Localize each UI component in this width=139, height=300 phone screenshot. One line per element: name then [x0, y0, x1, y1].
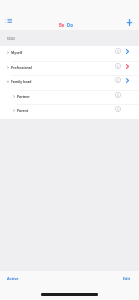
button[interactable]: Family head — [0, 75, 139, 90]
staticText: Be — [59, 22, 65, 28]
button[interactable]: Menu — [4, 16, 14, 26]
staticText: Professional — [11, 65, 32, 70]
button[interactable]: Professional — [0, 61, 139, 76]
button[interactable]: Add — [125, 18, 134, 27]
staticText: Myself — [11, 50, 23, 55]
button[interactable]: Myself — [0, 46, 139, 61]
staticText: Active — [7, 276, 19, 281]
button[interactable]: Parent — [0, 104, 139, 119]
staticText: ROLES — [7, 37, 15, 41]
staticText: Edit — [123, 276, 131, 281]
staticText: Family head — [11, 79, 32, 84]
staticText: Partner — [17, 94, 30, 99]
staticText: Do — [67, 22, 73, 28]
button[interactable]: Active — [3, 274, 23, 283]
staticText: Parent — [17, 108, 29, 113]
button[interactable]: Edit — [119, 274, 135, 283]
button[interactable]: Partner — [0, 90, 139, 105]
